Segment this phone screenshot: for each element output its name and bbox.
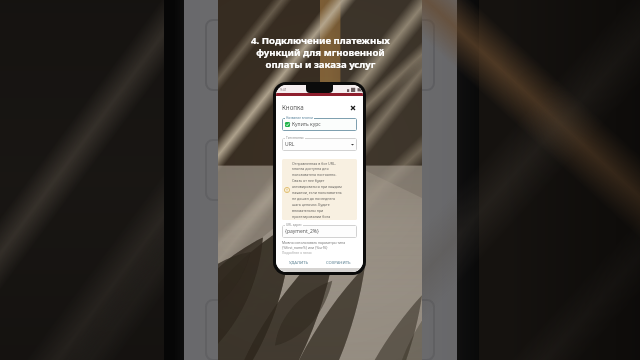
staticText: Можно использовать параметры типа {%firs… <box>282 240 346 250</box>
staticText: 9:41 <box>280 87 287 92</box>
button[interactable]: Закрыть <box>348 103 357 112</box>
staticText: {payment_2%} <box>285 228 319 235</box>
button[interactable]: СОХРАНИТЬ <box>322 257 355 269</box>
staticText: URL <box>285 141 295 148</box>
button[interactable]: УДАЛИТЬ <box>285 257 313 269</box>
button[interactable]: {payment_2%} <box>282 225 357 238</box>
staticText: Название кнопки <box>286 116 313 120</box>
staticText: УДАЛИТЬ <box>289 260 309 266</box>
staticText: Отправленная в бот URL- кнопка доступна … <box>292 161 342 219</box>
staticText: URL адрес <box>286 223 302 227</box>
staticText: Подробнее о типах <box>282 251 312 255</box>
staticText: Тип кнопки <box>286 136 304 140</box>
button[interactable]: Купить курс <box>282 118 357 131</box>
staticText: СОХРАНИТЬ <box>326 260 351 266</box>
button[interactable]: URL <box>282 138 357 151</box>
staticText: 4. Подключение платежных функций для мгн… <box>251 34 390 71</box>
staticText: Кнопка <box>282 103 304 111</box>
staticText: Купить курс <box>292 121 321 128</box>
